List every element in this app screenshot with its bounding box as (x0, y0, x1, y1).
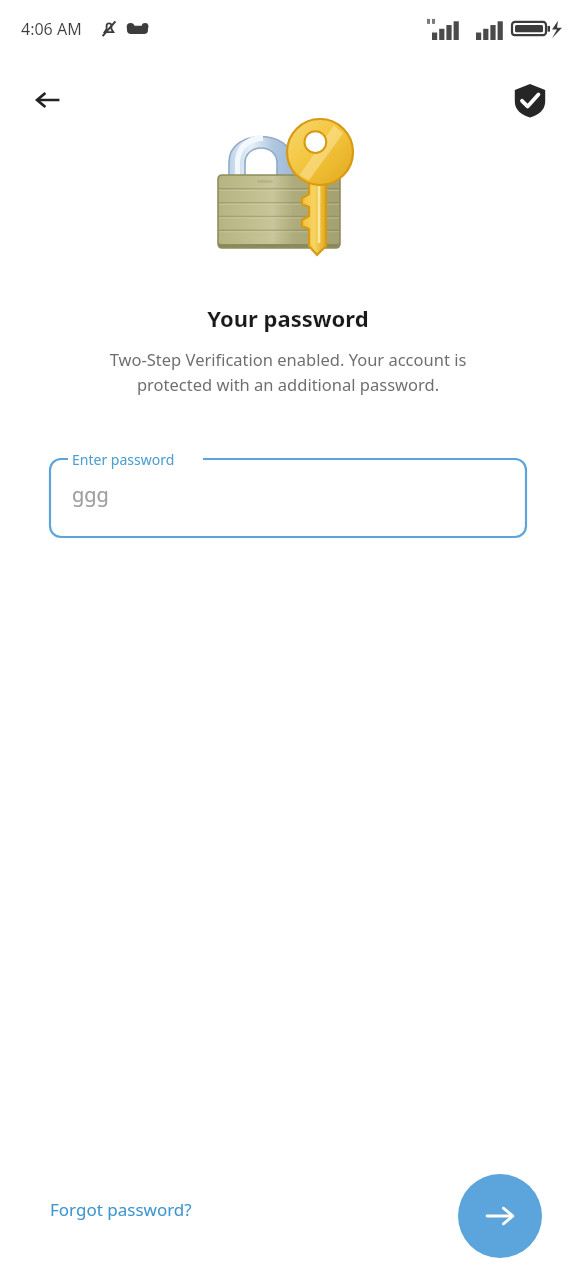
button[interactable]: Verified (502, 72, 558, 128)
staticText: ggg (72, 481, 109, 508)
staticText: Enter password (72, 450, 175, 469)
staticText: Your password (0, 303, 576, 333)
button[interactable]: Continue (458, 1174, 542, 1258)
staticText: 4:06 AM (21, 18, 82, 40)
staticText: Two-Step Verification enabled. Your acco… (36, 348, 540, 396)
button[interactable]: Forgot password? (36, 1192, 206, 1227)
button[interactable]: Back (20, 72, 76, 128)
button[interactable]: Enter password (50, 459, 526, 537)
staticText: Forgot password? (50, 1198, 192, 1221)
